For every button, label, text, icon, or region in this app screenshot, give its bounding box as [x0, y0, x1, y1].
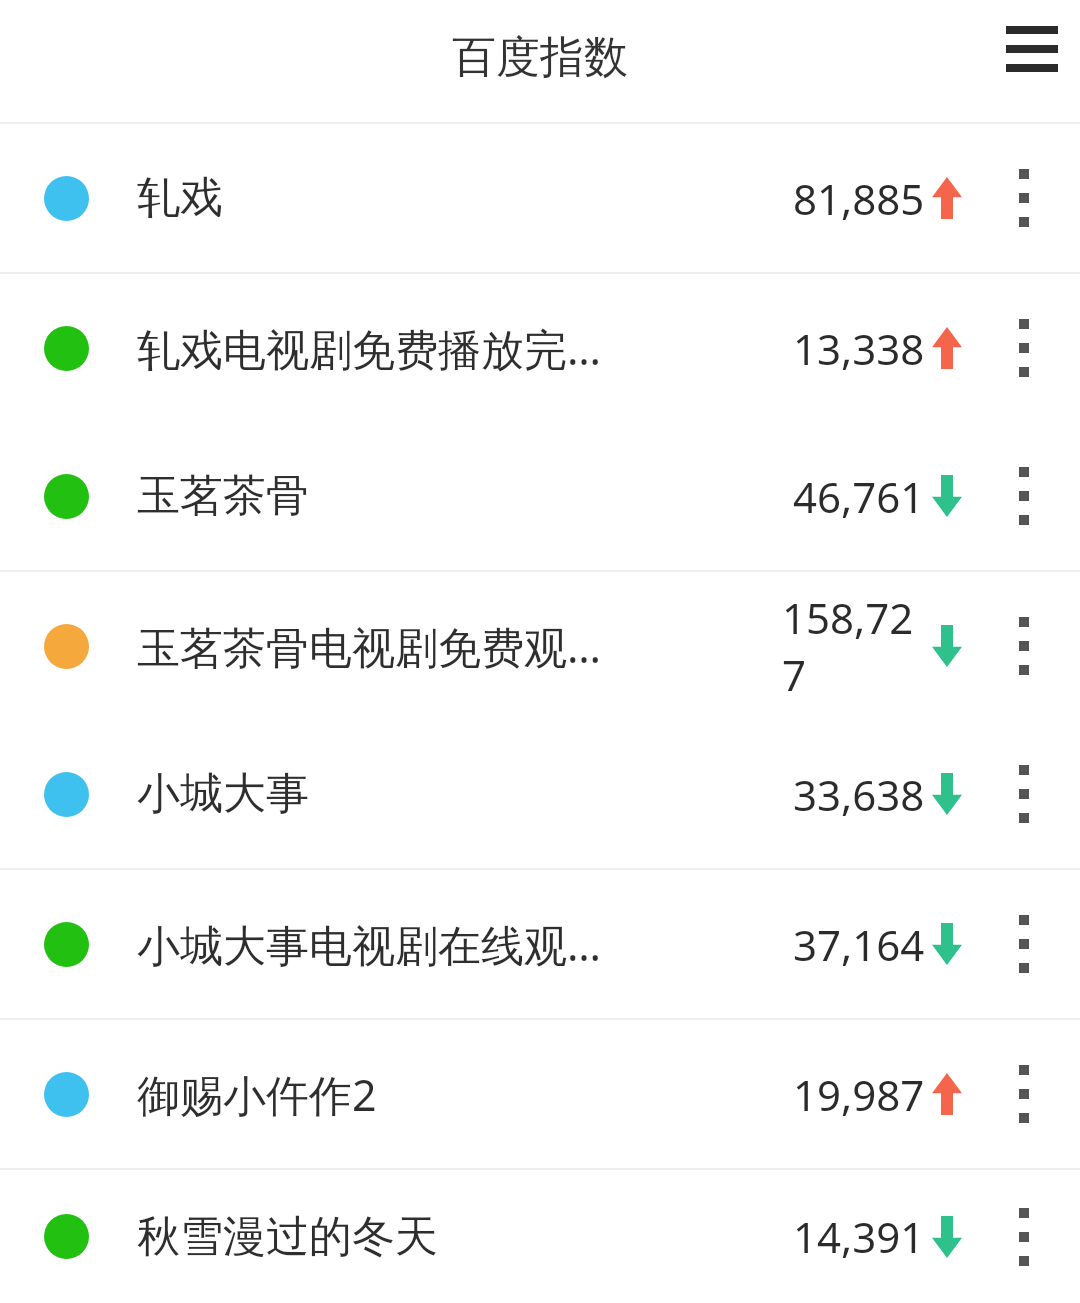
staticText: 19,987: [793, 1066, 925, 1123]
button[interactable]: 玉茗茶骨: [0, 422, 1080, 570]
staticText: 轧戏: [137, 171, 223, 225]
button[interactable]: More options: [967, 422, 1080, 570]
staticText: 33,638: [793, 766, 925, 823]
button[interactable]: 秋雪漫过的冬天: [0, 1170, 1080, 1303]
staticText: 14,391: [793, 1208, 925, 1265]
button[interactable]: 轧戏: [0, 124, 1080, 272]
button[interactable]: More options: [967, 870, 1080, 1018]
button[interactable]: More options: [967, 124, 1080, 272]
button[interactable]: 小城大事: [0, 720, 1080, 868]
button[interactable]: More options: [967, 1020, 1080, 1168]
staticText: 小城大事: [137, 767, 309, 821]
staticText: 百度指数: [452, 30, 628, 85]
button[interactable]: 御赐小仵作2: [0, 1020, 1080, 1168]
staticText: 玉茗茶骨: [137, 469, 309, 523]
button[interactable]: More options: [967, 1170, 1080, 1303]
staticText: 秋雪漫过的冬天: [137, 1210, 438, 1264]
staticText: 轧戏电视剧免费播放完…: [137, 319, 602, 378]
button[interactable]: 轧戏电视剧免费播放完…: [0, 274, 1080, 422]
button[interactable]: More options: [967, 720, 1080, 868]
button[interactable]: 玉茗茶骨电视剧免费观…: [0, 572, 1080, 720]
button[interactable]: More options: [967, 274, 1080, 422]
button[interactable]: 小城大事电视剧在线观…: [0, 870, 1080, 1018]
staticText: 小城大事电视剧在线观…: [137, 915, 602, 974]
staticText: 玉茗茶骨电视剧免费观…: [137, 617, 602, 676]
button[interactable]: Menu: [984, 1, 1080, 97]
staticText: 81,885: [793, 170, 925, 227]
staticText: 158,727: [782, 589, 925, 703]
staticText: 13,338: [793, 320, 925, 377]
staticText: 御赐小仵作2: [137, 1065, 377, 1124]
button[interactable]: More options: [967, 572, 1080, 720]
staticText: 46,761: [793, 468, 925, 525]
staticText: 37,164: [793, 916, 925, 973]
